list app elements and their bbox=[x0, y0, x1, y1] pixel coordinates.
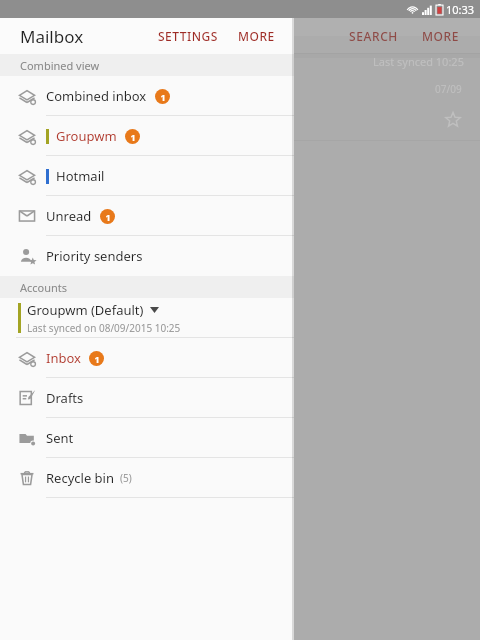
button[interactable]: Groupwm (Default) bbox=[0, 298, 294, 338]
button[interactable]: SETTINGS bbox=[153, 22, 223, 50]
staticText: Last synced 10:25 bbox=[373, 54, 464, 69]
staticText: 1 bbox=[130, 131, 136, 143]
staticText: SEARCH bbox=[349, 28, 398, 44]
staticText: Drafts bbox=[46, 389, 84, 407]
button[interactable]: MORE bbox=[416, 28, 466, 44]
staticText: Mailbox bbox=[20, 25, 84, 48]
staticText: Groupwm bbox=[56, 127, 117, 145]
staticText: 07/09 bbox=[435, 82, 462, 96]
button[interactable]: Drafts bbox=[0, 378, 294, 418]
button[interactable]: Recycle bin bbox=[0, 458, 294, 498]
button[interactable]: Hotmail bbox=[0, 156, 294, 196]
staticText: Unread bbox=[46, 207, 92, 225]
staticText: 1 bbox=[94, 353, 100, 365]
staticText: MORE bbox=[422, 28, 460, 44]
staticText: Groupwm (Default) bbox=[27, 301, 144, 319]
staticText: Hotmail bbox=[56, 167, 105, 185]
staticText: Combined inbox bbox=[46, 87, 147, 105]
staticText: Inbox bbox=[46, 349, 81, 367]
staticText: (5) bbox=[120, 471, 132, 485]
staticText: 1 bbox=[105, 211, 111, 223]
staticText: Combined view bbox=[20, 58, 100, 73]
staticText: MORE bbox=[238, 28, 275, 44]
button[interactable]: Combined inbox bbox=[0, 76, 294, 116]
button[interactable]: Unread bbox=[0, 196, 294, 236]
staticText: Sent bbox=[46, 429, 74, 447]
staticText: Accounts bbox=[20, 280, 68, 295]
staticText: Last synced on 08/09/2015 10:25 bbox=[27, 321, 181, 335]
staticText: Priority senders bbox=[46, 247, 143, 265]
button[interactable]: Sent bbox=[0, 418, 294, 458]
staticText: 1 bbox=[160, 91, 166, 103]
button[interactable]: Inbox bbox=[0, 338, 294, 378]
staticText: Recycle bin bbox=[46, 469, 114, 487]
button[interactable]: MORE bbox=[233, 22, 280, 50]
staticText: SETTINGS bbox=[158, 28, 218, 44]
button[interactable]: Priority senders bbox=[0, 236, 294, 276]
staticText: 10:33 bbox=[446, 2, 475, 17]
button[interactable]: SEARCH bbox=[343, 28, 404, 44]
button[interactable]: Groupwm bbox=[0, 116, 294, 156]
